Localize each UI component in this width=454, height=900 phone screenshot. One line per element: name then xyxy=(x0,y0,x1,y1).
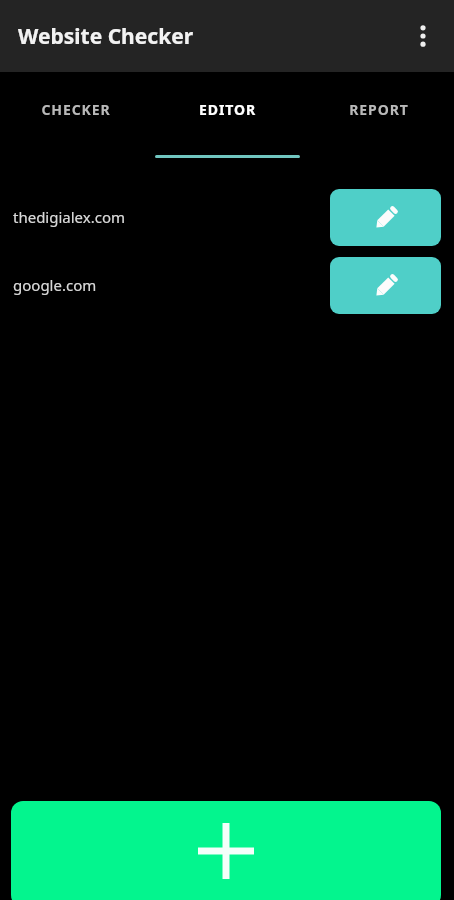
staticText: REPORT xyxy=(349,100,409,119)
button[interactable]: Add website xyxy=(11,801,441,900)
button[interactable]: Edit google.com xyxy=(330,257,441,314)
button[interactable]: Edit thedigialex.com xyxy=(330,189,441,246)
button[interactable]: EDITOR xyxy=(152,72,303,158)
staticText: CHECKER xyxy=(41,100,111,119)
button[interactable]: More options xyxy=(401,14,445,58)
button[interactable]: REPORT xyxy=(303,72,454,158)
staticText: thedigialex.com xyxy=(13,207,126,227)
button[interactable]: CHECKER xyxy=(0,72,152,158)
staticText: Website Checker xyxy=(18,22,194,51)
staticText: EDITOR xyxy=(199,100,256,119)
staticText: google.com xyxy=(13,275,97,295)
